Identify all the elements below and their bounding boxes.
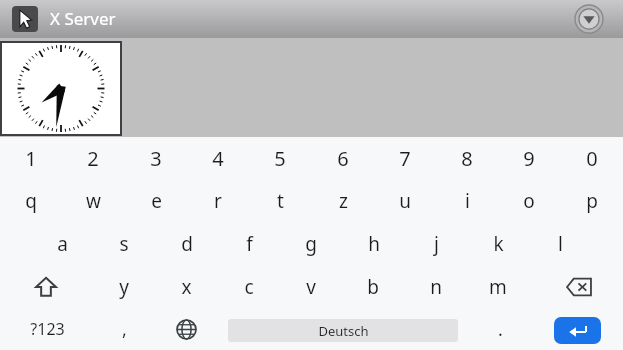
- staticText: n: [430, 274, 442, 300]
- button[interactable]: X Server icon: [12, 6, 38, 32]
- button[interactable]: 5: [249, 137, 311, 179]
- button[interactable]: 2: [62, 137, 124, 179]
- staticText: f: [246, 231, 253, 257]
- staticText: w: [86, 188, 101, 214]
- staticText: h: [368, 231, 380, 257]
- button[interactable]: g: [280, 222, 342, 265]
- button[interactable]: q: [0, 179, 62, 222]
- button[interactable]: 9: [498, 137, 560, 179]
- staticText: p: [586, 188, 598, 214]
- staticText: s: [119, 231, 129, 257]
- staticText: d: [181, 231, 193, 257]
- staticText: y: [119, 274, 129, 300]
- staticText: j: [434, 231, 439, 257]
- button[interactable]: x: [155, 265, 217, 308]
- button[interactable]: b: [342, 265, 404, 308]
- button[interactable]: u: [374, 179, 436, 222]
- staticText: .: [498, 317, 503, 342]
- button[interactable]: f: [218, 222, 280, 265]
- button[interactable]: 4: [187, 137, 249, 179]
- staticText: i: [465, 188, 470, 214]
- button[interactable]: Enter: [554, 317, 601, 344]
- staticText: 1: [25, 145, 37, 172]
- staticText: a: [57, 231, 68, 257]
- staticText: z: [339, 188, 348, 214]
- button[interactable]: w: [62, 179, 124, 222]
- button[interactable]: a: [31, 222, 93, 265]
- button[interactable]: t: [249, 179, 311, 222]
- staticText: g: [305, 231, 317, 257]
- staticText: c: [244, 274, 254, 300]
- button[interactable]: j: [405, 222, 467, 265]
- button[interactable]: k: [467, 222, 529, 265]
- button[interactable]: l: [529, 222, 591, 265]
- button[interactable]: ,: [96, 308, 152, 350]
- staticText: 5: [274, 145, 286, 172]
- button[interactable]: p: [561, 179, 623, 222]
- button[interactable]: m: [467, 265, 529, 308]
- button[interactable]: r: [187, 179, 249, 222]
- button[interactable]: h: [343, 222, 405, 265]
- staticText: o: [523, 188, 535, 214]
- staticText: 9: [523, 145, 535, 172]
- staticText: e: [151, 188, 162, 214]
- staticText: r: [214, 188, 222, 214]
- staticText: x: [181, 274, 192, 300]
- button[interactable]: e: [125, 179, 187, 222]
- staticText: ,: [122, 317, 127, 342]
- staticText: k: [493, 231, 504, 257]
- button[interactable]: z: [312, 179, 374, 222]
- staticText: l: [558, 231, 563, 257]
- staticText: 6: [337, 145, 349, 172]
- button[interactable]: Backspace: [543, 265, 615, 308]
- button[interactable]: 7: [374, 137, 436, 179]
- staticText: 3: [150, 145, 162, 172]
- staticText: u: [399, 188, 411, 214]
- button[interactable]: Show options: [575, 5, 603, 33]
- button[interactable]: ?123: [8, 308, 86, 350]
- button[interactable]: y: [93, 265, 155, 308]
- staticText: v: [306, 274, 316, 300]
- button[interactable]: n: [405, 265, 467, 308]
- button[interactable]: 6: [312, 137, 374, 179]
- button[interactable]: Clock: [0, 41, 122, 136]
- staticText: 0: [586, 145, 598, 172]
- staticText: Deutsch: [318, 322, 369, 340]
- button[interactable]: 0: [561, 137, 623, 179]
- button[interactable]: Change language: [160, 308, 212, 350]
- staticText: 8: [461, 145, 473, 172]
- staticText: X Server: [50, 7, 116, 30]
- staticText: 4: [212, 145, 224, 172]
- button[interactable]: .: [472, 308, 528, 350]
- staticText: q: [25, 188, 37, 214]
- staticText: t: [277, 188, 284, 214]
- button[interactable]: s: [93, 222, 155, 265]
- button[interactable]: 1: [0, 137, 62, 179]
- staticText: b: [367, 274, 379, 300]
- staticText: m: [489, 274, 507, 300]
- button[interactable]: 3: [125, 137, 187, 179]
- staticText: ?123: [30, 318, 65, 340]
- button[interactable]: c: [218, 265, 280, 308]
- button[interactable]: i: [436, 179, 498, 222]
- button[interactable]: Shift: [10, 265, 82, 308]
- button[interactable]: o: [498, 179, 560, 222]
- button[interactable]: Deutsch: [228, 319, 458, 342]
- button[interactable]: 8: [436, 137, 498, 179]
- staticText: 2: [87, 145, 99, 172]
- button[interactable]: v: [280, 265, 342, 308]
- button[interactable]: d: [156, 222, 218, 265]
- staticText: 7: [399, 145, 411, 172]
